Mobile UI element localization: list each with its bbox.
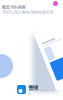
staticText: 700万+用户都在用的投资社区 (2, 9, 54, 15)
staticText: 聪明的投资者都在这里 (28, 89, 55, 95)
staticText: 覆盖150+国家 (2, 4, 26, 10)
button[interactable]: 雪球 (17, 85, 59, 94)
staticText: 雪球 (28, 85, 38, 91)
